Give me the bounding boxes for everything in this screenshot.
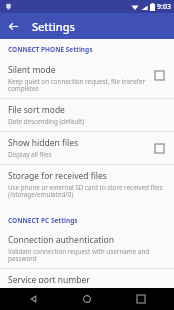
button[interactable]: Back [14,288,54,310]
staticText: Settings [32,19,75,34]
staticText: Date descending (default) [8,117,85,126]
staticText: Validate connection request with usernam… [8,247,168,263]
staticText: CONNECT PC Settings [8,216,78,225]
staticText: Display all files [8,150,52,159]
button[interactable]: Service port number [0,269,174,288]
button[interactable]: Show hidden files [0,132,174,164]
button[interactable]: Back [0,13,26,39]
button[interactable]: Toggle Show hidden files [150,139,168,157]
button[interactable]: Home [67,288,107,310]
button[interactable]: Storage for received files [0,165,174,204]
button[interactable]: File sort mode [0,99,174,131]
staticText: Storage for received files [8,170,107,182]
staticText: Use phone or external SD card to store r… [8,183,163,199]
staticText: Service port number [8,274,90,283]
staticText: Keep quiet on connection request, file t… [8,77,146,93]
staticText: Show hidden files [8,137,79,149]
staticText: Connection authentication [8,234,114,246]
staticText: File sort mode [8,104,65,116]
staticText: 9:03 [157,2,171,12]
staticText: Silent mode [8,64,56,76]
button[interactable]: Recents [121,288,161,310]
button[interactable]: Silent mode [0,58,174,98]
button[interactable]: Connection authentication [0,229,174,268]
staticText: CONNECT PHONE Settings [8,45,93,54]
button[interactable]: Toggle Silent mode [150,66,168,84]
